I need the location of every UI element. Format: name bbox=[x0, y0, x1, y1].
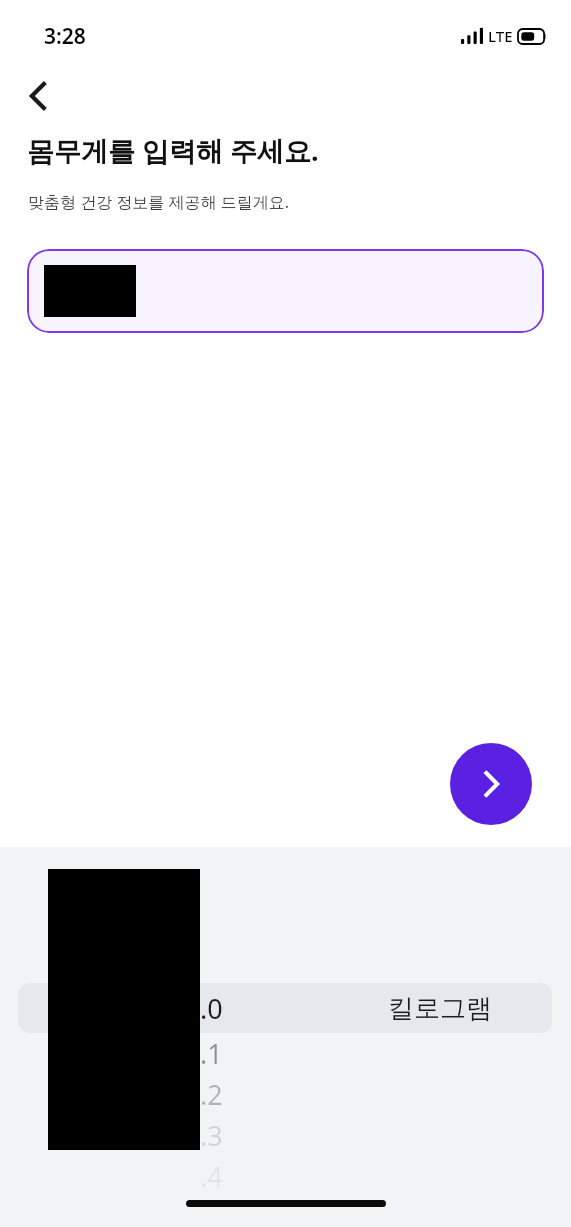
staticText: 킬로그램 bbox=[345, 992, 535, 1025]
button[interactable]: Next bbox=[450, 743, 532, 825]
button[interactable]: .2 bbox=[0, 1074, 571, 1115]
staticText: .3 bbox=[200, 1117, 350, 1154]
staticText: 3:28 bbox=[44, 22, 86, 51]
staticText: 맞춤형 건강 정보를 제공해 드릴게요. bbox=[28, 191, 289, 213]
staticText: .1 bbox=[200, 1035, 350, 1072]
button[interactable]: .1 bbox=[0, 1033, 571, 1074]
button[interactable]: .3 bbox=[0, 1115, 571, 1156]
staticText: LTE bbox=[488, 26, 513, 46]
staticText: .2 bbox=[200, 1076, 350, 1113]
staticText: .0 bbox=[200, 990, 350, 1027]
button[interactable]: .0 bbox=[0, 983, 571, 1033]
button[interactable]: Back bbox=[14, 72, 62, 120]
staticText: 몸무게를 입력해 주세요. bbox=[27, 132, 319, 169]
button[interactable] bbox=[27, 249, 544, 333]
